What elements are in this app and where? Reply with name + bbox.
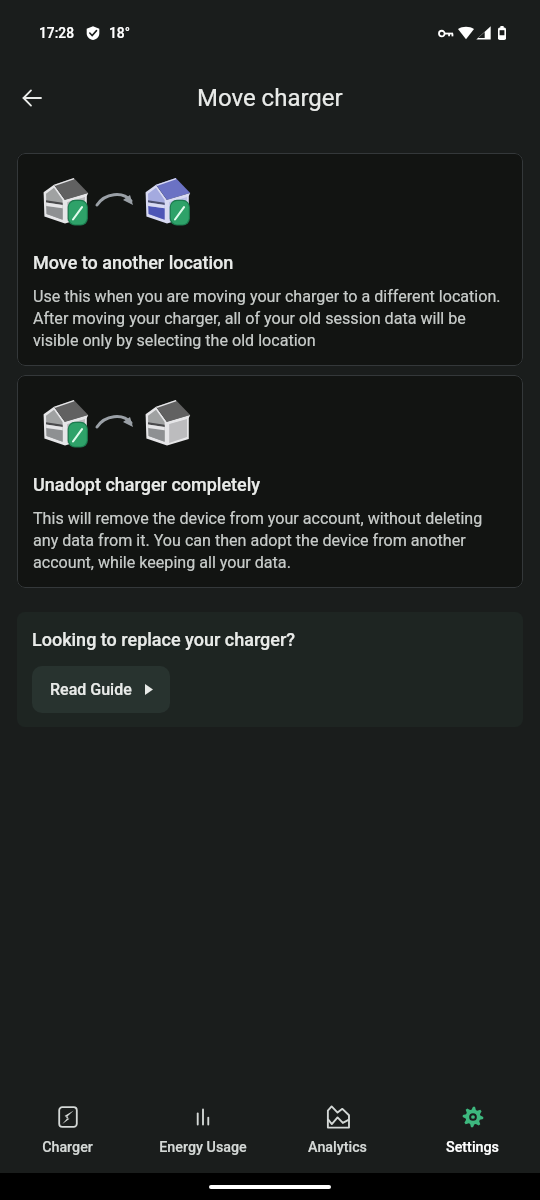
staticText: 17:28 xyxy=(39,25,75,41)
staticText: Move to another location xyxy=(33,252,234,273)
staticText: Settings xyxy=(446,1139,499,1156)
button[interactable]: Back xyxy=(10,76,54,120)
staticText: Looking to replace your charger? xyxy=(32,629,296,650)
button[interactable]: Settings xyxy=(405,1096,540,1173)
button[interactable]: Unadopt charger completely xyxy=(17,375,523,588)
staticText: Charger xyxy=(42,1139,93,1156)
staticText: Use this when you are moving your charge… xyxy=(33,287,507,350)
button[interactable]: Move to another location xyxy=(17,153,523,366)
staticText: Read Guide xyxy=(50,680,132,699)
button[interactable]: Energy Usage xyxy=(135,1096,270,1173)
button[interactable]: Analytics xyxy=(270,1096,405,1173)
button[interactable]: Charger xyxy=(0,1096,135,1173)
button[interactable]: Read Guide xyxy=(32,666,170,713)
staticText: Energy Usage xyxy=(159,1139,247,1156)
staticText: Move charger xyxy=(197,84,343,112)
staticText: Unadopt charger completely xyxy=(33,474,261,495)
staticText: 18° xyxy=(109,25,130,41)
staticText: This will remove the device from your ac… xyxy=(33,509,507,572)
staticText: Analytics xyxy=(308,1139,367,1156)
